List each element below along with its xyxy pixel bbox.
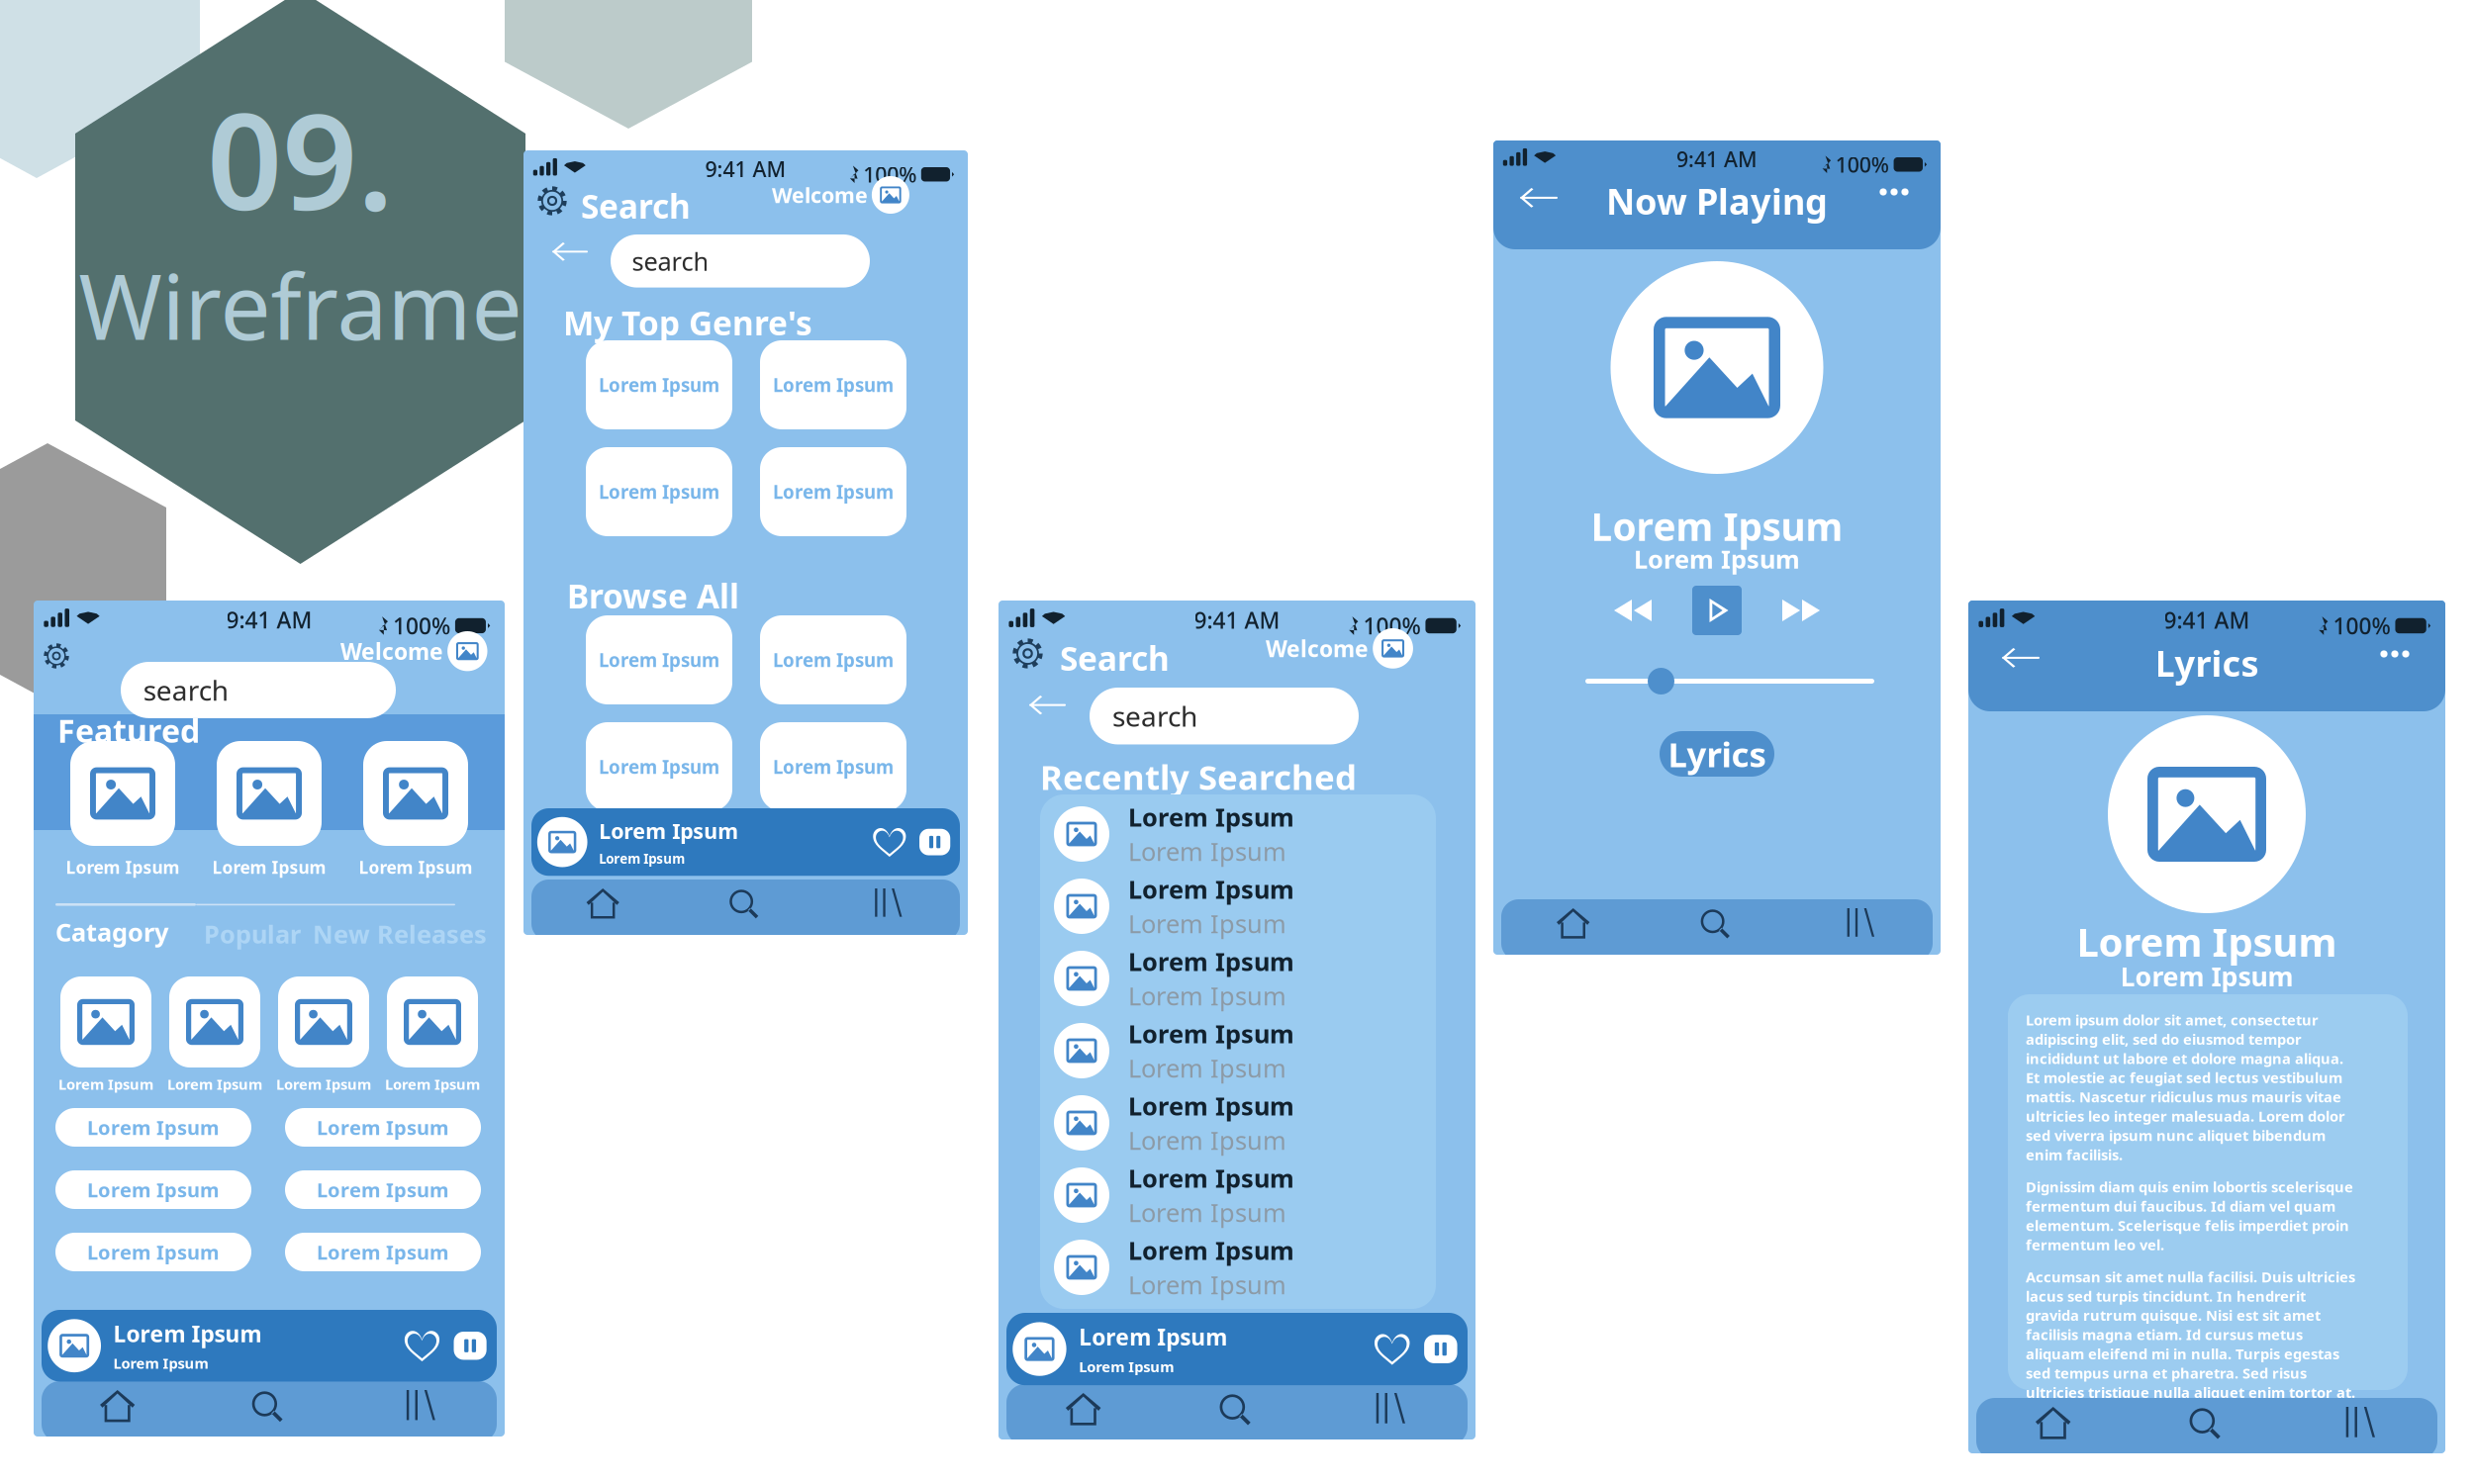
button[interactable]: Lorem Ipsum (1054, 806, 1410, 862)
button[interactable]: Back (2002, 648, 2040, 668)
button[interactable]: Lorem Ipsum (586, 447, 732, 536)
button[interactable]: New Releases (313, 917, 487, 950)
button[interactable]: Library (345, 1381, 497, 1434)
button[interactable]: Lorem Ipsum (586, 340, 732, 429)
button[interactable]: Lorem Ipsum (1054, 951, 1410, 1006)
staticText: Welcome (772, 181, 868, 209)
button[interactable]: Next (1782, 600, 1820, 621)
button[interactable]: Welcome (340, 631, 487, 671)
button[interactable]: Lorem Ipsum (285, 1108, 481, 1147)
button[interactable]: Home (1006, 1384, 1160, 1437)
staticText: Accumsan sit amet nulla facilisi. Duis u… (2026, 1267, 2355, 1402)
staticText: Welcome (340, 636, 443, 666)
button[interactable]: Lorem Ipsum (285, 1170, 481, 1209)
button[interactable]: Back (1520, 188, 1558, 208)
staticText: 100% (393, 611, 450, 641)
button[interactable]: More options (2380, 650, 2410, 658)
button[interactable]: Welcome (772, 176, 909, 214)
button[interactable]: Back (1029, 696, 1066, 714)
button[interactable]: Lorem Ipsum (285, 1233, 481, 1271)
button[interactable]: Lorem Ipsum (760, 340, 906, 429)
button[interactable]: Home (42, 1381, 193, 1434)
button[interactable]: Lorem Ipsum (586, 615, 732, 704)
button[interactable]: Lorem Ipsum (42, 1310, 497, 1382)
button[interactable]: Lorem Ipsum (531, 808, 960, 876)
staticText: Lorem Ipsum (58, 1074, 153, 1094)
staticText: Lorem Ipsum (167, 1074, 262, 1094)
button[interactable]: Lorem Ipsum (1054, 1095, 1410, 1151)
staticText: Lorem Ipsum (773, 373, 894, 397)
staticText: 9:41 AM (1676, 145, 1758, 173)
staticText: Lorem Ipsum (1128, 1268, 1286, 1301)
button[interactable]: Previous (1614, 600, 1652, 621)
button[interactable]: Settings (537, 186, 567, 216)
staticText: Lorem Ipsum (1591, 501, 1843, 551)
staticText: Lorem Ipsum (2077, 915, 2337, 968)
staticText: Lorem Ipsum (1079, 1322, 1227, 1352)
staticText: Lorem Ipsum (212, 856, 326, 879)
button[interactable]: Lorem Ipsum (760, 615, 906, 704)
button[interactable]: Lorem Ipsum (1054, 1240, 1410, 1295)
button[interactable]: Lorem Ipsum (760, 722, 906, 811)
button[interactable]: Lorem Ipsum (760, 447, 906, 536)
staticText: Lorem Ipsum (1128, 1161, 1294, 1195)
staticText: Lorem Ipsum (599, 479, 719, 504)
staticText: 9:41 AM (226, 605, 312, 635)
button[interactable]: Lyrics (1660, 731, 1774, 777)
staticText: Search (1060, 636, 1170, 680)
button[interactable]: Search (674, 880, 817, 932)
button[interactable]: search (611, 234, 870, 288)
button[interactable]: Settings (44, 643, 69, 669)
button[interactable]: Lorem Ipsum (55, 1108, 251, 1147)
button[interactable]: Home (1976, 1398, 2130, 1450)
staticText: Lorem Ipsum (1634, 542, 1800, 575)
button[interactable]: Lorem Ipsum (1054, 879, 1410, 934)
staticText: 9:41 AM (1194, 605, 1280, 635)
button[interactable]: search (1090, 688, 1359, 744)
button[interactable]: Lorem Ipsum (55, 1170, 251, 1209)
button[interactable]: Library (1314, 1384, 1468, 1437)
button[interactable]: Home (531, 880, 674, 932)
staticText: Lorem Ipsum (87, 1114, 220, 1141)
staticText: Lorem Ipsum (317, 1239, 449, 1265)
button[interactable]: Search (2130, 1398, 2284, 1450)
staticText: Lorem Ipsum (317, 1177, 449, 1203)
button[interactable]: Library (817, 880, 960, 932)
staticText: Lorem Ipsum (1128, 907, 1286, 940)
button[interactable]: Search (193, 1381, 345, 1434)
button[interactable]: Lorem Ipsum (1054, 1023, 1410, 1078)
staticText: 9:41 AM (2164, 605, 2250, 635)
staticText: search (632, 244, 709, 278)
button[interactable]: search (121, 662, 396, 718)
button[interactable]: Home (1501, 899, 1645, 952)
button[interactable]: Lorem Ipsum (1006, 1313, 1468, 1385)
staticText: Recently Searched (1040, 754, 1357, 799)
staticText: Wireframe (79, 245, 522, 364)
staticText: Lorem Ipsum (385, 1074, 480, 1094)
button[interactable]: Search (1160, 1384, 1314, 1437)
button[interactable]: Lorem Ipsum (55, 1233, 251, 1271)
button[interactable]: Library (1789, 899, 1933, 952)
staticText: Lorem Ipsum (276, 1074, 371, 1094)
staticText: Welcome (1266, 633, 1369, 663)
staticText: 09. (207, 71, 394, 246)
staticText: 100% (863, 160, 916, 188)
button[interactable]: Lorem Ipsum (586, 722, 732, 811)
button[interactable]: Welcome (1266, 628, 1413, 669)
staticText: Lyrics (1668, 731, 1766, 777)
button[interactable]: Back (552, 242, 588, 261)
staticText: search (143, 672, 228, 708)
staticText: Popular (204, 917, 301, 950)
button[interactable]: Library (2284, 1398, 2437, 1450)
button[interactable]: More options (1879, 188, 1909, 196)
staticText: Now Playing (1606, 177, 1828, 224)
button[interactable]: Popular (204, 917, 301, 950)
button[interactable]: Search (1645, 899, 1789, 952)
staticText: My Top Genre's (563, 301, 812, 345)
staticText: Dignissim diam quis enim lobortis sceler… (2026, 1177, 2353, 1254)
button[interactable]: Lorem Ipsum (1054, 1167, 1410, 1223)
button[interactable]: Catagory (55, 915, 168, 948)
staticText: Lorem Ipsum (1128, 1051, 1286, 1084)
button[interactable]: Settings (1012, 638, 1043, 669)
button[interactable]: Play (1692, 586, 1742, 635)
